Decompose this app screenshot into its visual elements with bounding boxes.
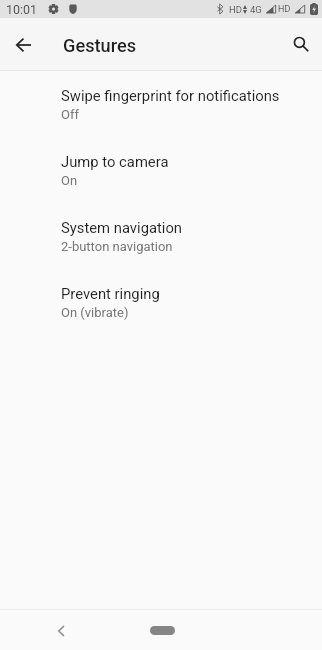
staticText: Jump to camera [61, 153, 169, 170]
button[interactable]: Prevent ringing [0, 269, 322, 335]
staticText: Gestures [63, 35, 137, 56]
button[interactable]: Back [1, 23, 45, 67]
staticText: On [61, 173, 78, 188]
button[interactable]: Home [150, 626, 175, 635]
staticText: 10:01 [6, 2, 38, 17]
button[interactable]: Back [43, 613, 78, 648]
button[interactable]: Swipe fingerprint for notifications [0, 71, 322, 137]
button[interactable]: Search [279, 22, 322, 66]
button[interactable]: System navigation [0, 203, 322, 269]
staticText: On (vibrate) [61, 305, 129, 320]
staticText: HD [229, 4, 243, 15]
staticText: HD [278, 4, 291, 15]
staticText: System navigation [61, 219, 183, 236]
staticText: Off [61, 107, 79, 122]
staticText: Swipe fingerprint for notifications [61, 87, 280, 104]
staticText: 4G [250, 4, 262, 15]
button[interactable]: Jump to camera [0, 137, 322, 203]
staticText: Prevent ringing [61, 285, 160, 302]
staticText: 2-button navigation [61, 239, 173, 254]
